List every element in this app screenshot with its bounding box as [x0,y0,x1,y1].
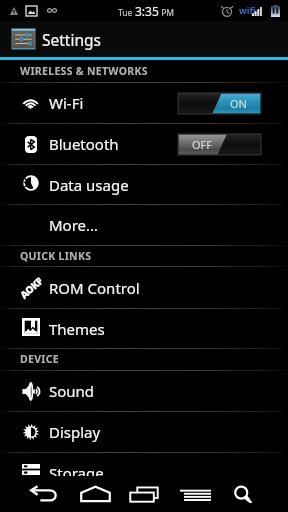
staticText: WIRELESS & NETWORKS [20,64,148,78]
other: Home [80,486,111,502]
staticText: Storage [49,463,104,483]
button[interactable]: Sound [0,371,288,412]
button[interactable]: Settings [0,21,288,57]
staticText: AOKP [17,274,45,302]
button[interactable]: Recents [121,476,167,512]
button[interactable]: Bluetooth [0,124,288,165]
button[interactable]: ON [178,93,261,114]
other: Back [30,486,58,502]
button[interactable]: Themes [0,309,288,349]
staticText: QUICK LINKS [20,249,92,263]
button[interactable]: Menu [172,476,218,512]
other: Search [232,486,254,503]
button[interactable]: Display [0,412,288,453]
button[interactable]: Search [220,476,266,512]
staticText: Themes [49,319,105,339]
button[interactable]: AOKP [0,267,288,309]
staticText: OFF [192,137,213,152]
button[interactable]: Data usage [0,165,288,205]
button[interactable]: Back [21,476,67,512]
staticText: Tue [118,7,135,19]
staticText: Bluetooth [49,134,119,154]
button[interactable]: Home [72,476,118,512]
staticText: 3:35 [135,3,159,19]
staticText: ROM Control [49,278,140,298]
staticText: More… [49,215,98,235]
button[interactable]: Storage [0,453,288,494]
staticText: DEVICE [20,352,59,366]
staticText: PM [159,7,175,19]
staticText: ON [230,96,247,111]
other: Recents [130,487,158,502]
staticText: wifi [239,4,256,16]
staticText: Data usage [49,175,129,195]
other: Menu [180,488,211,500]
staticText: Settings [42,29,101,50]
staticText: Display [49,422,101,442]
staticText: Sound [49,381,95,401]
button[interactable]: OFF [178,134,261,155]
button[interactable]: More… [0,205,288,246]
button[interactable]: Wi-Fi [0,83,288,124]
staticText: Wi-Fi [49,93,84,113]
